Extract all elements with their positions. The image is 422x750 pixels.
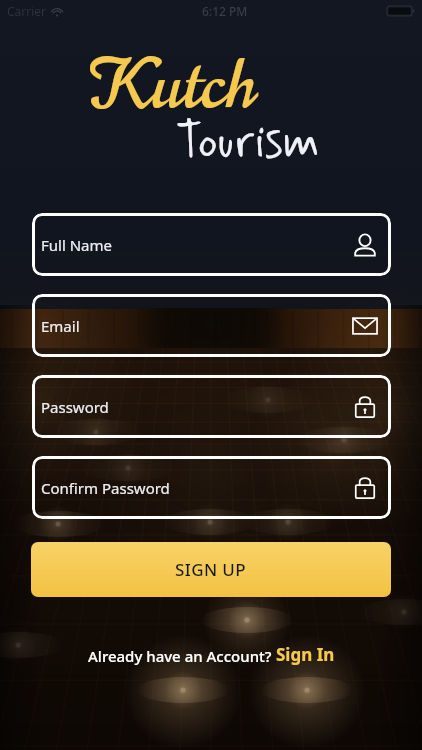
staticText: Kutch: [90, 38, 255, 132]
button[interactable]: SIGN UP: [31, 542, 391, 597]
button[interactable]: Full Name: [32, 213, 391, 276]
staticText: Tourism: [176, 113, 320, 173]
other: Email: [351, 312, 379, 340]
other: Full Name: [351, 231, 379, 259]
staticText: Email: [41, 316, 80, 336]
other: Password: [351, 393, 379, 421]
staticText: SIGN UP: [175, 558, 247, 581]
button[interactable]: Confirm Password: [32, 456, 391, 519]
staticText: Carrier: [7, 3, 47, 19]
staticText: Confirm Password: [41, 478, 170, 498]
other: Confirm Password: [351, 474, 379, 502]
button[interactable]: Email: [32, 294, 391, 357]
staticText: Full Name: [41, 235, 112, 255]
button[interactable]: Sign In: [276, 643, 335, 666]
staticText: Sign In: [276, 643, 335, 666]
button[interactable]: Password: [32, 375, 391, 438]
staticText: Already have an Account?: [88, 646, 276, 666]
staticText: Password: [41, 397, 109, 417]
staticText: 6:12 PM: [202, 3, 248, 19]
